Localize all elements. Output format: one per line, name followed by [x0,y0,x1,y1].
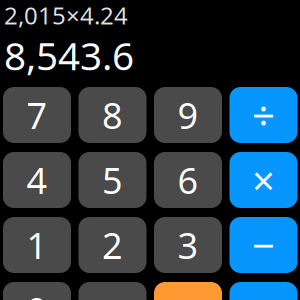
button[interactable]: 0 [3,282,71,300]
button[interactable]: 6 [154,152,222,208]
staticText: 4 [26,156,47,204]
button[interactable]: 3 [154,217,222,273]
staticText: 0 [26,286,47,300]
staticText: 3 [177,221,198,269]
button[interactable]: 2 [78,217,146,273]
button[interactable]: 5 [78,152,146,208]
button[interactable]: 4 [3,152,71,208]
button[interactable]: 1 [3,217,71,273]
staticText: 5 [102,156,123,204]
button[interactable]: Equals [154,282,222,300]
button[interactable]: Decimal point [78,282,146,300]
staticText: 9 [177,91,198,139]
staticText: 8 [102,91,123,139]
button[interactable]: 7 [3,87,71,143]
staticText: 7 [26,91,47,139]
staticText: 8,543.6 [4,30,134,81]
button[interactable]: Subtract [229,217,297,273]
button[interactable]: Add [229,282,297,300]
staticText: × [252,153,275,206]
staticText: 2,015×4.24 [4,0,128,31]
button[interactable]: Multiply [229,152,297,208]
button[interactable]: 9 [154,87,222,143]
staticText: 1 [26,221,47,269]
button[interactable]: Divide [229,87,297,143]
button[interactable]: 8 [78,87,146,143]
staticText: 2 [102,221,123,269]
staticText: ÷ [252,88,275,141]
staticText: − [252,218,275,271]
staticText: 6 [177,156,198,204]
